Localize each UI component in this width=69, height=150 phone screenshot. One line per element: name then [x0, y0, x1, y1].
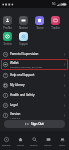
staticText: Notices [19, 26, 28, 30]
button[interactable]: Home [13, 137, 27, 146]
button[interactable]: Library [41, 137, 55, 146]
staticText: Library [44, 143, 52, 146]
staticText: Trading [51, 26, 60, 30]
button[interactable]: Version [1, 110, 68, 121]
staticText: Sign Out [31, 122, 44, 126]
button[interactable]: Sign Out [4, 120, 65, 128]
button[interactable]: Explore [0, 137, 13, 146]
staticText: Legal [10, 103, 18, 107]
button[interactable]: Store [35, 16, 44, 30]
staticText: Store [36, 26, 44, 30]
button[interactable]: Profile [3, 16, 12, 30]
button[interactable]: Settings [3, 32, 12, 46]
staticText: Explore [2, 143, 11, 146]
staticText: Help and Support [10, 73, 35, 77]
button[interactable]: Help and Support [1, 70, 68, 80]
staticText: Payment methods, gift cards [10, 65, 43, 68]
button[interactable]: Legal [1, 100, 68, 110]
button[interactable]: Parental Supervision [1, 49, 68, 59]
button[interactable]: Support [19, 32, 28, 46]
staticText: Search [30, 143, 38, 146]
staticText: More [59, 143, 65, 146]
button[interactable]: Notices [19, 16, 28, 30]
staticText: Home [17, 143, 24, 146]
button[interactable]: More [55, 137, 69, 146]
button[interactable]: Wallet [1, 59, 68, 70]
staticText: Wallet [10, 61, 19, 65]
staticText: 5G [52, 2, 56, 6]
staticText: 1.204.0.0 [10, 116, 21, 119]
button[interactable]: Search [27, 137, 41, 146]
button[interactable]: My Library [1, 80, 68, 90]
staticText: Parental Supervision [10, 52, 39, 56]
button[interactable]: Health and Safety [1, 90, 68, 100]
staticText: Settings [3, 42, 12, 46]
staticText: Health and Safety [10, 93, 35, 97]
staticText: My Library [10, 83, 25, 87]
staticText: Version [10, 112, 21, 116]
staticText: Profile [3, 26, 12, 30]
staticText: Support [19, 42, 28, 46]
button[interactable]: Trading [51, 16, 60, 30]
